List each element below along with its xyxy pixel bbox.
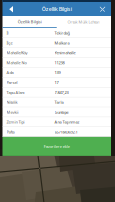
staticText: Tarla xyxy=(54,100,63,105)
staticText: Ana Taşınmaz xyxy=(54,119,79,125)
staticText: Malkara xyxy=(54,40,69,45)
staticText: Yenimahalle xyxy=(54,50,75,55)
staticText: Özellik Bilgisi xyxy=(42,5,72,13)
staticText: Tekirdağ xyxy=(54,30,69,36)
staticText: 7.847,23 xyxy=(54,90,68,95)
staticText: Özellik Bilgisi xyxy=(18,19,42,24)
staticText: Ada xyxy=(6,70,13,75)
button[interactable]: Özellik Bilgisi xyxy=(2,16,57,28)
staticText: 17 xyxy=(54,80,58,85)
staticText: Parsel xyxy=(6,80,17,85)
staticText: Favorilere ekle xyxy=(44,144,70,149)
staticText: 139 xyxy=(54,70,60,75)
staticText: Zemin Tipi xyxy=(6,119,24,125)
staticText: İl xyxy=(6,30,8,36)
staticText: 11238 xyxy=(54,60,64,65)
button[interactable]: Favorilere ekle xyxy=(2,137,111,156)
staticText: İlçe xyxy=(6,40,12,45)
staticText: 6571843692-1 xyxy=(54,129,77,135)
button[interactable]: Kapat xyxy=(95,2,109,16)
staticText: Güntepe xyxy=(54,109,68,115)
staticText: Nitelik xyxy=(6,100,17,105)
staticText: Pafta xyxy=(6,129,14,135)
button[interactable]: Ortak Mülk Lehtarı xyxy=(57,16,111,28)
staticText: Ortak Mülk Lehtarı xyxy=(67,19,100,25)
staticText: Tapu Alanı xyxy=(6,90,24,95)
staticText: Mahalle/Köy xyxy=(6,50,27,55)
button[interactable]: Geri xyxy=(4,2,18,16)
staticText: Mahalle No xyxy=(6,60,26,65)
staticText: Mevkii xyxy=(6,109,18,115)
